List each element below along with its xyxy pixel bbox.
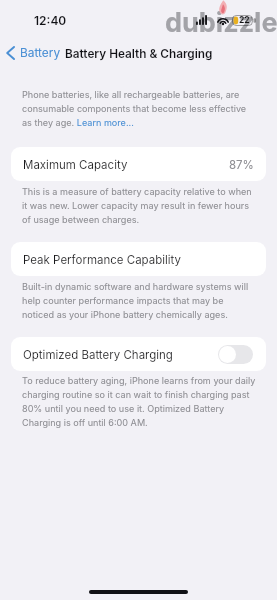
staticText: Peak Performance Capability [23, 254, 182, 267]
staticText: 22 [239, 16, 250, 25]
staticText: 12:40 [34, 13, 67, 28]
staticText: 87% [229, 159, 254, 172]
button[interactable]: Optimized Battery Charging [11, 337, 266, 371]
button[interactable]: Battery [3, 42, 63, 63]
staticText: To reduce battery aging, iPhone learns f… [22, 373, 257, 429]
staticText: Maximum Capacity [23, 159, 128, 172]
staticText: Built-in dynamic software and hardware s… [22, 279, 257, 321]
staticText: Battery Health & Charging [65, 48, 213, 61]
button[interactable]: Optimized Battery Charging toggle [218, 345, 253, 364]
staticText: Battery [20, 47, 61, 60]
staticText: Phone batteries, like all rechargeable b… [22, 87, 257, 129]
staticText: dubizzle [165, 6, 277, 39]
staticText: Optimized Battery Charging [23, 349, 173, 362]
button[interactable]: Peak Performance Capability [11, 242, 266, 276]
button[interactable]: Maximum Capacity [11, 147, 266, 181]
staticText: This is a measure of battery capacity re… [22, 184, 257, 226]
